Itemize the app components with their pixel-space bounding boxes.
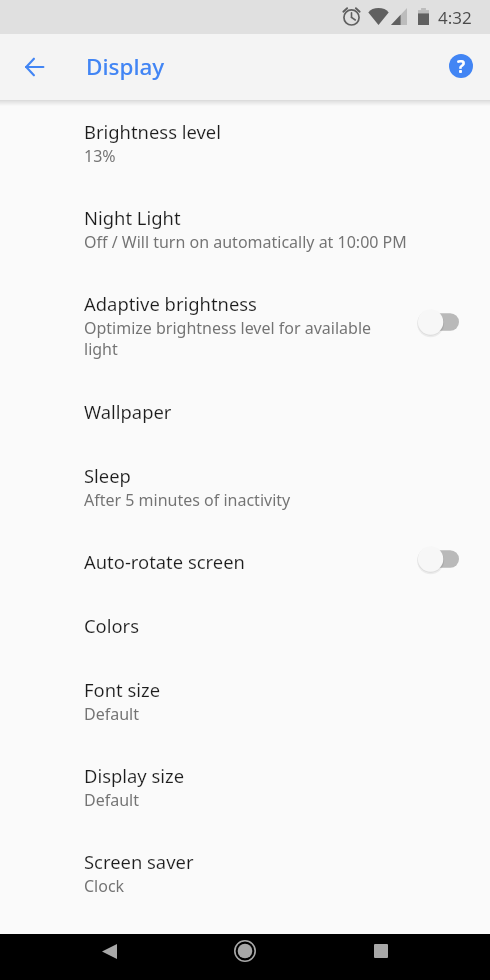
staticText: Clock (84, 875, 125, 897)
staticText: 4:32 (438, 6, 472, 29)
button[interactable]: Screen saver (0, 849, 490, 935)
staticText: 13% (84, 145, 116, 167)
staticText: Off / Will turn on automatically at 10:0… (84, 231, 407, 253)
staticText: After 5 minutes of inactivity (84, 489, 291, 511)
button[interactable]: Font size (0, 677, 490, 763)
button[interactable]: Back (78, 934, 140, 968)
button[interactable]: Brightness level (0, 119, 490, 205)
button[interactable]: Toggle (413, 539, 469, 579)
staticText: Wallpaper (84, 399, 172, 424)
staticText: Default (84, 789, 139, 811)
staticText: Sleep (84, 463, 131, 488)
staticText: Font size (84, 677, 161, 702)
staticText: Optimize brightness level for available … (84, 317, 384, 360)
button[interactable]: Night Light (0, 205, 490, 291)
staticText: Display size (84, 763, 185, 788)
staticText: Colors (84, 613, 140, 638)
staticText: Brightness level (84, 119, 221, 144)
button[interactable]: Home (214, 934, 276, 968)
button[interactable]: Navigate up (13, 46, 55, 88)
staticText: Auto-rotate screen (84, 549, 245, 574)
button[interactable]: Auto-rotate screen (0, 549, 490, 613)
staticText: Adaptive brightness (84, 291, 257, 316)
button[interactable]: Wallpaper (0, 399, 490, 463)
staticText: Screen saver (84, 849, 194, 874)
button[interactable]: Recent apps (350, 934, 412, 968)
staticText: Default (84, 703, 139, 725)
button[interactable]: Colors (0, 613, 490, 677)
staticText: Night Light (84, 205, 181, 230)
button[interactable]: Help (441, 46, 481, 86)
staticText: ? (457, 55, 466, 78)
staticText: Display (86, 51, 165, 82)
button[interactable]: Toggle (413, 302, 469, 342)
button[interactable]: Display size (0, 763, 490, 849)
button[interactable]: Adaptive brightness (0, 291, 490, 399)
button[interactable]: Sleep (0, 463, 490, 549)
